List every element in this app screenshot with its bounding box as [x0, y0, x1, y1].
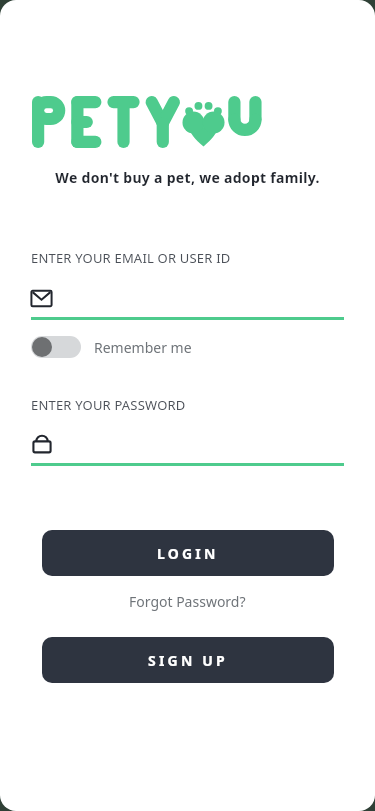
- staticText: ENTER YOUR PASSWORD: [31, 396, 186, 414]
- button[interactable]: SIGN UP: [42, 637, 334, 683]
- button[interactable]: Remember me: [31, 336, 192, 358]
- button[interactable]: Password: [31, 430, 344, 458]
- button[interactable]: LOGIN: [42, 530, 334, 576]
- button[interactable]: Email: [31, 285, 344, 311]
- button[interactable]: Forgot Password?: [121, 590, 254, 613]
- staticText: ENTER YOUR EMAIL OR USER ID: [31, 249, 231, 267]
- other: Email: [31, 288, 52, 309]
- other: Password: [31, 433, 53, 455]
- staticText: LOGIN: [157, 544, 219, 563]
- staticText: Remember me: [94, 338, 192, 357]
- staticText: SIGN UP: [148, 651, 228, 670]
- staticText: We don't buy a pet, we adopt family.: [55, 168, 320, 187]
